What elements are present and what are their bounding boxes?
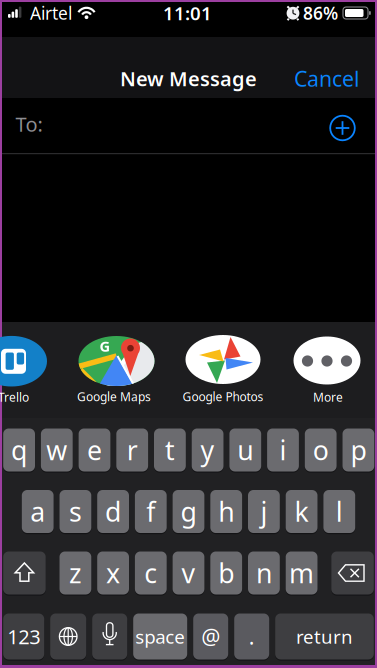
staticText: k [295,494,309,529]
staticText: 11:01 [163,1,212,25]
staticText: v [181,555,195,591]
button[interactable]: r [116,428,148,471]
staticText: j [260,494,267,529]
staticText: h [218,494,234,529]
staticText: g [180,494,196,529]
staticText: To: [15,111,42,137]
button[interactable]: f [135,490,167,533]
button[interactable]: Shift [3,551,46,594]
button[interactable]: v [173,551,204,594]
staticText: r [127,432,138,468]
staticText: space [135,624,185,649]
button[interactable]: c [135,551,167,594]
button[interactable]: y [192,428,223,471]
button[interactable]: p [342,428,374,471]
staticText: c [144,555,157,591]
staticText: New Message [120,65,257,92]
staticText: s [69,494,82,529]
button[interactable]: h [210,490,242,533]
button[interactable]: Add Contact [329,114,356,141]
button[interactable]: x [97,551,129,594]
staticText: d [105,494,121,529]
staticText: t [165,432,175,468]
staticText: y [201,432,215,468]
staticText: b [218,555,234,591]
button[interactable]: return [275,613,374,659]
button[interactable]: g [173,490,204,533]
button[interactable]: n [248,551,280,594]
button[interactable]: m [286,551,317,594]
button[interactable]: a [22,490,54,533]
button[interactable]: @ [193,613,228,659]
staticText: e [87,432,102,468]
button[interactable]: i [267,428,299,471]
staticText: i [279,432,286,468]
button[interactable]: k [286,490,317,533]
staticText: n [256,555,272,591]
button[interactable]: u [229,428,261,471]
button[interactable]: b [210,551,242,594]
staticText: x [106,555,120,591]
staticText: Trello [0,389,29,405]
staticText: u [237,432,253,468]
staticText: p [350,432,366,468]
staticText: 86% [303,1,338,24]
staticText: l [336,494,343,529]
button[interactable]: o [305,428,337,471]
button[interactable]: Delete [331,551,374,594]
staticText: More [313,389,343,405]
staticText: a [30,494,45,529]
staticText: @ [201,622,220,651]
staticText: 123 [7,623,40,650]
button[interactable]: space [133,613,187,659]
staticText: Google Maps [77,388,151,404]
button[interactable]: Cancel [294,64,360,93]
staticText: . [249,622,255,651]
staticText: w [46,432,67,468]
staticText: Airtel [30,1,72,24]
button[interactable]: Next Keyboard [50,613,86,659]
button[interactable]: t [154,428,186,471]
button[interactable]: z [59,551,91,594]
button[interactable]: d [97,490,129,533]
staticText: return [296,624,353,649]
button[interactable]: l [323,490,355,533]
staticText: f [146,494,155,529]
staticText: Google Photos [182,388,263,404]
button[interactable]: Trello [0,333,51,411]
button[interactable]: More [287,333,367,411]
button[interactable]: e [79,428,110,471]
button[interactable]: Google Maps [76,333,156,411]
button[interactable]: s [59,490,91,533]
button[interactable]: 123 [3,613,44,659]
button[interactable]: . [234,613,269,659]
staticText: Cancel [294,64,360,93]
button[interactable]: Dictate [92,613,127,659]
button[interactable]: q [3,428,35,471]
staticText: m [289,555,314,591]
button[interactable]: Google Photos [183,333,263,411]
button[interactable]: j [248,490,280,533]
staticText: q [11,432,27,468]
staticText: o [313,432,329,468]
staticText: z [69,555,82,591]
staticText: G [99,336,110,356]
button[interactable]: w [41,428,73,471]
